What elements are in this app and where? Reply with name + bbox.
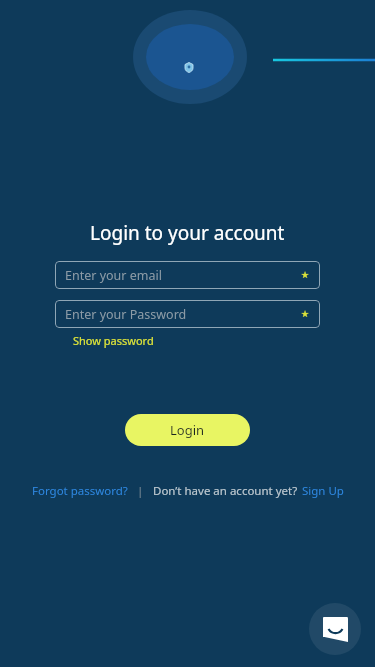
- button[interactable]: Show password: [73, 328, 154, 350]
- staticText: ★: [301, 309, 310, 319]
- button[interactable]: Enter your Password: [55, 300, 320, 328]
- button[interactable]: Login: [125, 414, 250, 446]
- button[interactable]: Enter your email: [55, 261, 320, 289]
- staticText: Don’t have an account yet?: [153, 483, 298, 499]
- staticText: Enter your Password: [65, 306, 301, 323]
- staticText: Login: [170, 421, 205, 439]
- staticText: Forgot password?: [32, 483, 128, 499]
- staticText: Sign Up: [302, 483, 344, 499]
- button[interactable]: Sign Up: [302, 483, 344, 499]
- staticText: |: [137, 483, 144, 499]
- staticText: Login to your account: [90, 220, 285, 246]
- staticText: Show password: [73, 333, 154, 348]
- staticText: Enter your email: [65, 267, 301, 284]
- staticText: ★: [301, 270, 310, 280]
- button[interactable]: Open chat: [309, 603, 361, 655]
- button[interactable]: Forgot password?: [32, 483, 128, 499]
